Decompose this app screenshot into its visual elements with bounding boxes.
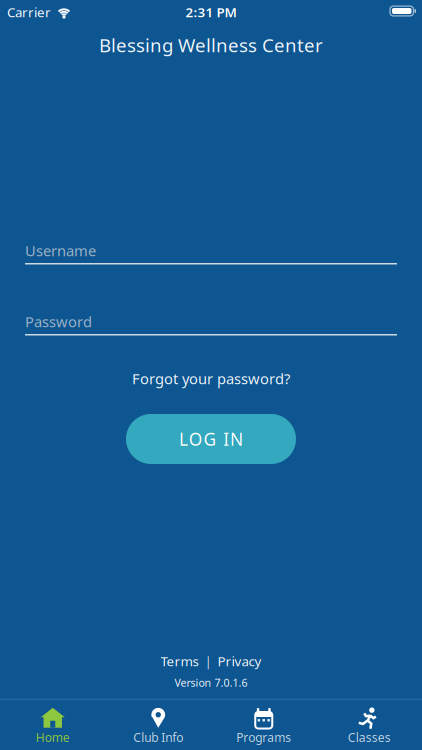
staticText: Version 7.0.1.6 [174,675,247,690]
staticText: Privacy [217,652,261,670]
staticText: | [204,652,211,670]
button[interactable]: Privacy [217,652,261,670]
button[interactable]: Programs [211,700,316,750]
staticText: Classes [348,729,391,745]
staticText: 2:31 PM [185,3,236,21]
button[interactable]: Classes [316,700,422,750]
staticText: LOG IN [179,427,243,450]
staticText: Blessing Wellness Center [99,33,323,57]
staticText: Programs [236,729,291,745]
staticText: Username [25,241,96,260]
button[interactable]: Home [0,700,105,750]
staticText: Password [25,312,92,331]
button[interactable]: Club Info [105,700,211,750]
button[interactable]: Terms [160,652,198,670]
button[interactable]: Forgot your password? [132,370,290,386]
staticText: Home [36,729,70,745]
button[interactable]: LOG IN [126,414,296,464]
staticText: Terms [160,652,198,670]
staticText: Club Info [133,729,183,745]
staticText: Carrier [7,3,51,21]
staticText: Forgot your password? [132,369,290,388]
